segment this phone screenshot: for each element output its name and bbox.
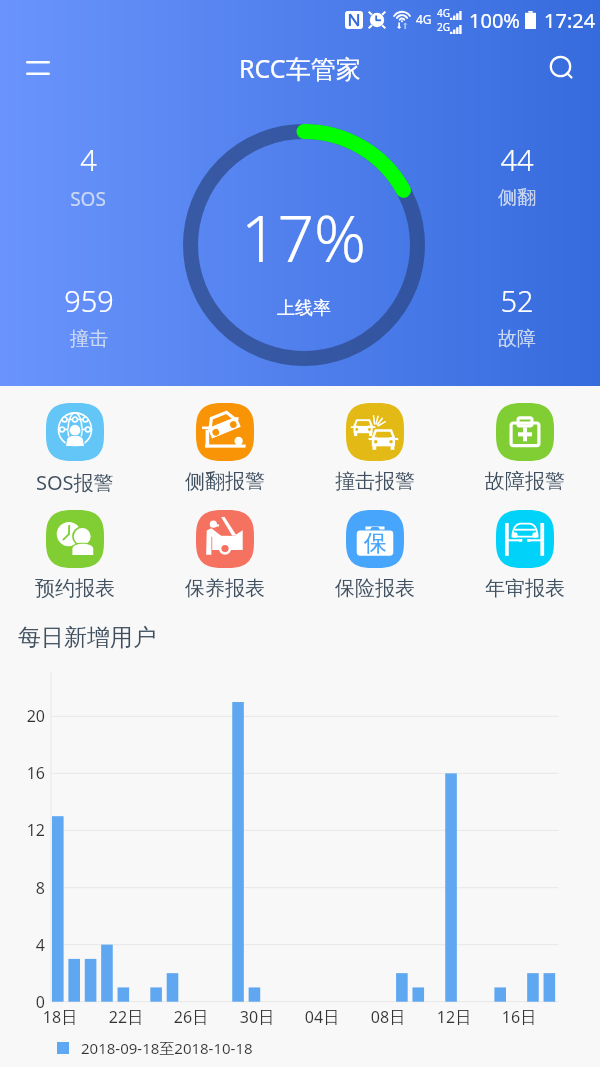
button[interactable]: 撞击报警 <box>300 403 450 494</box>
button[interactable]: 959 <box>29 281 149 351</box>
button[interactable]: 保 <box>300 510 450 601</box>
staticText: RCC车管家 <box>239 51 361 85</box>
staticText: 预约报表 <box>35 576 115 601</box>
staticText: 撞击报警 <box>335 469 415 494</box>
button[interactable]: 52 <box>457 281 577 351</box>
staticText: 12日 <box>424 1006 484 1028</box>
button[interactable]: 侧翻报警 <box>150 403 300 494</box>
staticText: 30日 <box>227 1006 287 1028</box>
staticText: 年审报表 <box>485 576 565 601</box>
staticText: 4 <box>80 140 97 179</box>
staticText: 16日 <box>489 1006 549 1028</box>
staticText: 18日 <box>30 1006 90 1028</box>
button[interactable]: 保养报表 <box>150 510 300 601</box>
staticText: 撞击 <box>70 327 108 351</box>
button[interactable]: 故障报警 <box>450 403 600 494</box>
staticText: 0 <box>4 991 45 1013</box>
staticText: 22日 <box>96 1006 156 1028</box>
staticText: 100% <box>469 7 520 34</box>
button[interactable]: Menu <box>14 44 62 92</box>
staticText: 侧翻 <box>498 186 536 210</box>
staticText: 4 <box>4 934 45 956</box>
staticText: 12 <box>4 819 45 841</box>
staticText: 26日 <box>161 1006 221 1028</box>
staticText: 08日 <box>358 1006 418 1028</box>
staticText: 20 <box>4 705 45 727</box>
staticText: 故障 <box>498 327 536 351</box>
staticText: 17:24 <box>544 7 596 34</box>
staticText: 2018-09-18至2018-10-18 <box>81 1038 253 1058</box>
staticText: 上线率 <box>277 297 331 320</box>
staticText: 959 <box>64 281 114 320</box>
staticText: 52 <box>500 281 534 320</box>
staticText: 每日新增用户 <box>18 623 156 652</box>
staticText: SOS报警 <box>36 469 114 496</box>
staticText: 侧翻报警 <box>185 469 265 494</box>
staticText: SOS <box>70 186 106 212</box>
staticText: 4G <box>416 11 432 27</box>
staticText: 4G <box>437 6 450 20</box>
staticText: 16 <box>4 762 45 784</box>
staticText: 8 <box>4 877 45 899</box>
button[interactable]: 预约报表 <box>0 510 150 601</box>
staticText: 44 <box>500 140 534 179</box>
staticText: 保养报表 <box>185 576 265 601</box>
button[interactable]: 4 <box>28 140 148 212</box>
staticText: 故障报警 <box>485 469 565 494</box>
staticText: 2G <box>437 20 450 34</box>
button[interactable]: Search <box>538 44 586 92</box>
button[interactable]: SOS报警 <box>0 403 150 496</box>
staticText: 保 <box>364 529 387 558</box>
button[interactable]: 年审报表 <box>450 510 600 601</box>
staticText: 04日 <box>292 1006 352 1028</box>
staticText: 保险报表 <box>335 576 415 601</box>
staticText: 17% <box>241 194 367 281</box>
button[interactable]: 44 <box>457 140 577 210</box>
